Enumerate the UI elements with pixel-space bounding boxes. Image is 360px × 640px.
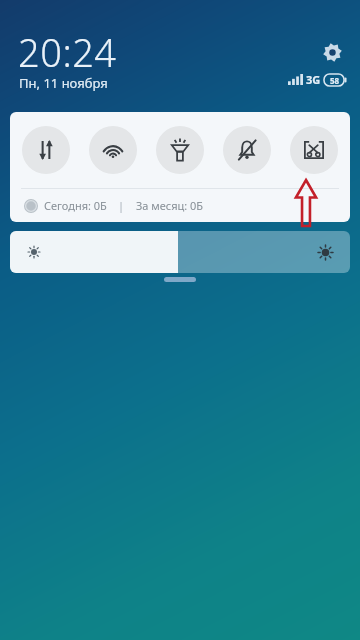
staticText: Сегодня: 0Б	[44, 198, 107, 213]
staticText: 3G	[306, 72, 321, 87]
button[interactable]: Сегодня: 0Б	[10, 189, 350, 222]
button[interactable]: Mobile data	[22, 126, 70, 174]
staticText: |	[118, 198, 125, 213]
staticText: Пн, 11 ноября	[19, 74, 108, 92]
button[interactable]: Wi-Fi	[89, 126, 137, 174]
staticText: За месяц: 0Б	[136, 198, 204, 213]
staticText: 58	[330, 75, 340, 86]
button[interactable]: Flashlight	[156, 126, 204, 174]
button[interactable]: Expand quick settings	[164, 277, 196, 282]
button[interactable]	[10, 231, 350, 273]
button[interactable]: Silent mode	[223, 126, 271, 174]
staticText: 20:24	[18, 26, 117, 78]
button[interactable]: Settings	[318, 38, 346, 66]
button[interactable]: Screenshot	[290, 126, 338, 174]
